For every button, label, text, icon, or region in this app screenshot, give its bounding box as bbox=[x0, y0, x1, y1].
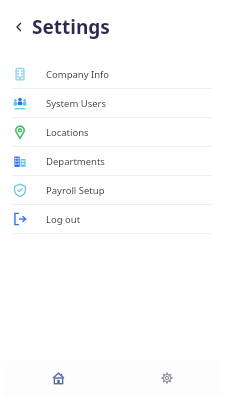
staticText: Company Info bbox=[46, 68, 110, 81]
button[interactable]: Settings bbox=[112, 360, 221, 396]
button[interactable]: Home bbox=[4, 360, 112, 396]
staticText: Locations bbox=[46, 126, 89, 139]
button[interactable]: Log out bbox=[0, 205, 225, 233]
button[interactable]: Back bbox=[10, 18, 28, 36]
button[interactable]: Locations bbox=[0, 118, 225, 146]
button[interactable]: System Users bbox=[0, 89, 225, 117]
staticText: System Users bbox=[46, 97, 107, 110]
staticText: Settings bbox=[32, 14, 110, 40]
staticText: Payroll Setup bbox=[46, 184, 105, 197]
button[interactable]: Payroll Setup bbox=[0, 176, 225, 204]
staticText: Log out bbox=[46, 213, 81, 226]
staticText: Departments bbox=[46, 155, 105, 168]
button[interactable]: Company Info bbox=[0, 60, 225, 88]
button[interactable]: Departments bbox=[0, 147, 225, 175]
